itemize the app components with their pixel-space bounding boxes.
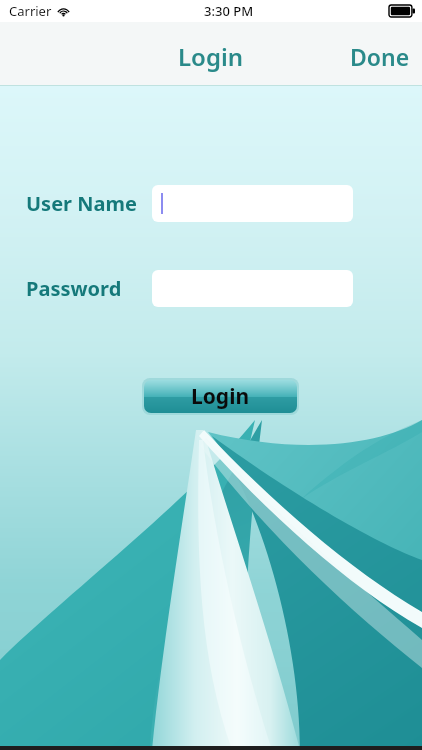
staticText: User Name	[26, 190, 137, 217]
button[interactable]: Login	[144, 380, 297, 413]
button[interactable]	[152, 270, 353, 307]
button[interactable]	[152, 185, 353, 222]
staticText: Password	[26, 275, 122, 302]
staticText: Carrier	[9, 2, 52, 20]
staticText: Login	[178, 40, 244, 73]
other: Wi-Fi signal	[57, 5, 70, 18]
button[interactable]: Done	[338, 33, 422, 80]
other: Battery full	[389, 5, 415, 17]
staticText: Login	[191, 382, 250, 411]
staticText: Done	[350, 41, 410, 72]
staticText: 3:30 PM	[204, 2, 254, 20]
